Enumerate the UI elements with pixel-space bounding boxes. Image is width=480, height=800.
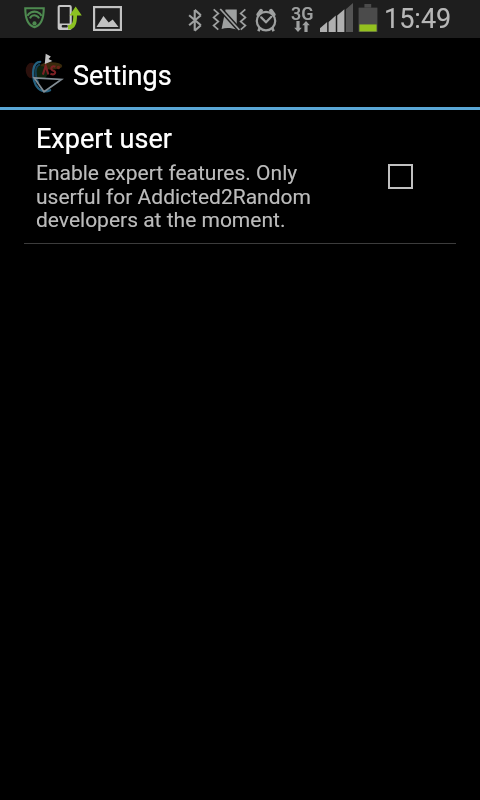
staticText: 15:49	[384, 3, 452, 35]
staticText: Enable expert features. Only userful for…	[36, 161, 311, 232]
button[interactable]: Expert user	[0, 110, 480, 244]
staticText: Expert user	[36, 123, 172, 155]
staticText: Settings	[73, 60, 172, 92]
button[interactable]: Expert user checkbox	[388, 164, 413, 189]
staticText: 3G	[291, 3, 314, 24]
button[interactable]: Settings	[0, 38, 480, 107]
